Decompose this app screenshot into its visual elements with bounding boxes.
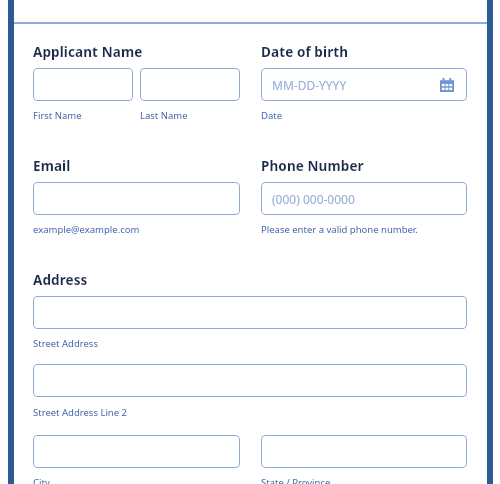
staticText: City <box>33 476 50 484</box>
staticText: Last Name <box>140 109 188 122</box>
button[interactable] <box>33 182 240 215</box>
button[interactable]: MM-DD-YYYY <box>261 68 467 101</box>
button[interactable] <box>33 296 467 329</box>
button[interactable] <box>33 68 133 101</box>
staticText: Applicant Name <box>33 43 143 61</box>
button[interactable]: (000) 000-0000 <box>261 182 467 215</box>
staticText: Street Address Line 2 <box>33 406 127 419</box>
staticText: Email <box>33 157 71 175</box>
staticText: (000) 000-0000 <box>272 191 355 207</box>
button[interactable] <box>33 364 467 397</box>
staticText: Phone Number <box>261 157 364 175</box>
button[interactable]: Open calendar picker <box>438 76 456 94</box>
staticText: Please enter a valid phone number. <box>261 223 418 236</box>
staticText: example@example.com <box>33 223 140 236</box>
button[interactable] <box>261 435 467 468</box>
staticText: Street Address <box>33 337 98 350</box>
staticText: Date of birth <box>261 43 349 61</box>
button[interactable] <box>33 435 240 468</box>
staticText: Date <box>261 109 283 122</box>
staticText: First Name <box>33 109 82 122</box>
button[interactable] <box>140 68 240 101</box>
staticText: MM-DD-YYYY <box>272 77 347 93</box>
staticText: State / Province <box>261 476 331 484</box>
staticText: Address <box>33 271 88 289</box>
